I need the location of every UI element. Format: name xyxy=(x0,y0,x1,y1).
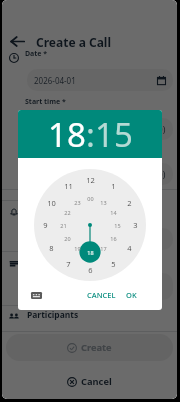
staticText: (00:00) xyxy=(137,123,166,135)
button[interactable]: Agenda xyxy=(4,253,24,273)
staticText: 2 xyxy=(127,198,132,208)
staticText: 2026-04-01 xyxy=(34,75,76,86)
button[interactable]: 18 xyxy=(48,112,86,157)
staticText: 00 xyxy=(87,195,94,202)
button[interactable]: 15 xyxy=(95,112,133,157)
button[interactable]: Notifications xyxy=(4,202,24,222)
button[interactable]: CANCEL xyxy=(83,286,120,304)
staticText: Description xyxy=(25,256,66,266)
staticText: 15 xyxy=(114,222,121,229)
staticText: : xyxy=(86,112,95,157)
staticText: 18 xyxy=(87,249,94,256)
staticText: 8 xyxy=(49,243,54,253)
staticText: 3 xyxy=(133,220,138,230)
staticText: 9 xyxy=(43,220,48,230)
button[interactable]: Switch to text input xyxy=(25,284,47,306)
staticText: 19 xyxy=(74,245,81,252)
staticText: 11 xyxy=(64,181,73,191)
button[interactable]: Schedule xyxy=(4,48,24,68)
staticText: (00:00) xyxy=(137,168,166,180)
staticText: Create a Call xyxy=(36,34,112,50)
staticText: End time * xyxy=(25,143,62,153)
staticText: 12 xyxy=(86,175,95,185)
staticText: 23 xyxy=(74,199,81,206)
button[interactable] xyxy=(27,273,173,300)
staticText: 18:15 xyxy=(34,124,55,135)
button[interactable]: Cancel xyxy=(2,368,177,395)
staticText: 16 xyxy=(110,235,117,242)
staticText: 1 xyxy=(111,181,116,191)
staticText: 20 xyxy=(64,235,71,242)
staticText: 13 xyxy=(100,199,107,206)
button[interactable]: Create xyxy=(6,334,173,361)
staticText: 21 xyxy=(60,222,67,229)
staticText: Start time * xyxy=(25,97,66,107)
button[interactable]: OK xyxy=(122,286,141,304)
button[interactable] xyxy=(27,228,173,250)
staticText: 10 xyxy=(47,198,56,208)
staticText: 14 xyxy=(110,209,117,216)
button[interactable]: 18:15 xyxy=(27,118,173,140)
staticText: 17 xyxy=(100,245,107,252)
staticText: Date * xyxy=(25,49,48,59)
staticText: 6 xyxy=(88,265,93,275)
button[interactable]: Participants xyxy=(4,307,24,327)
staticText: 4 xyxy=(127,243,132,253)
button[interactable]: Back xyxy=(6,30,28,52)
staticText: Subject xyxy=(25,210,51,220)
staticText: Cancel xyxy=(81,375,112,388)
staticText: Create xyxy=(81,341,112,354)
staticText: 5 xyxy=(111,259,116,269)
staticText: 22 xyxy=(64,209,71,216)
staticText: Participants xyxy=(27,309,79,321)
button[interactable]: 18:45 xyxy=(27,163,173,185)
staticText: OK xyxy=(126,290,137,300)
button[interactable]: 2026-04-01 xyxy=(27,69,173,91)
staticText: CANCEL xyxy=(87,290,116,300)
staticText: 7 xyxy=(66,259,71,269)
